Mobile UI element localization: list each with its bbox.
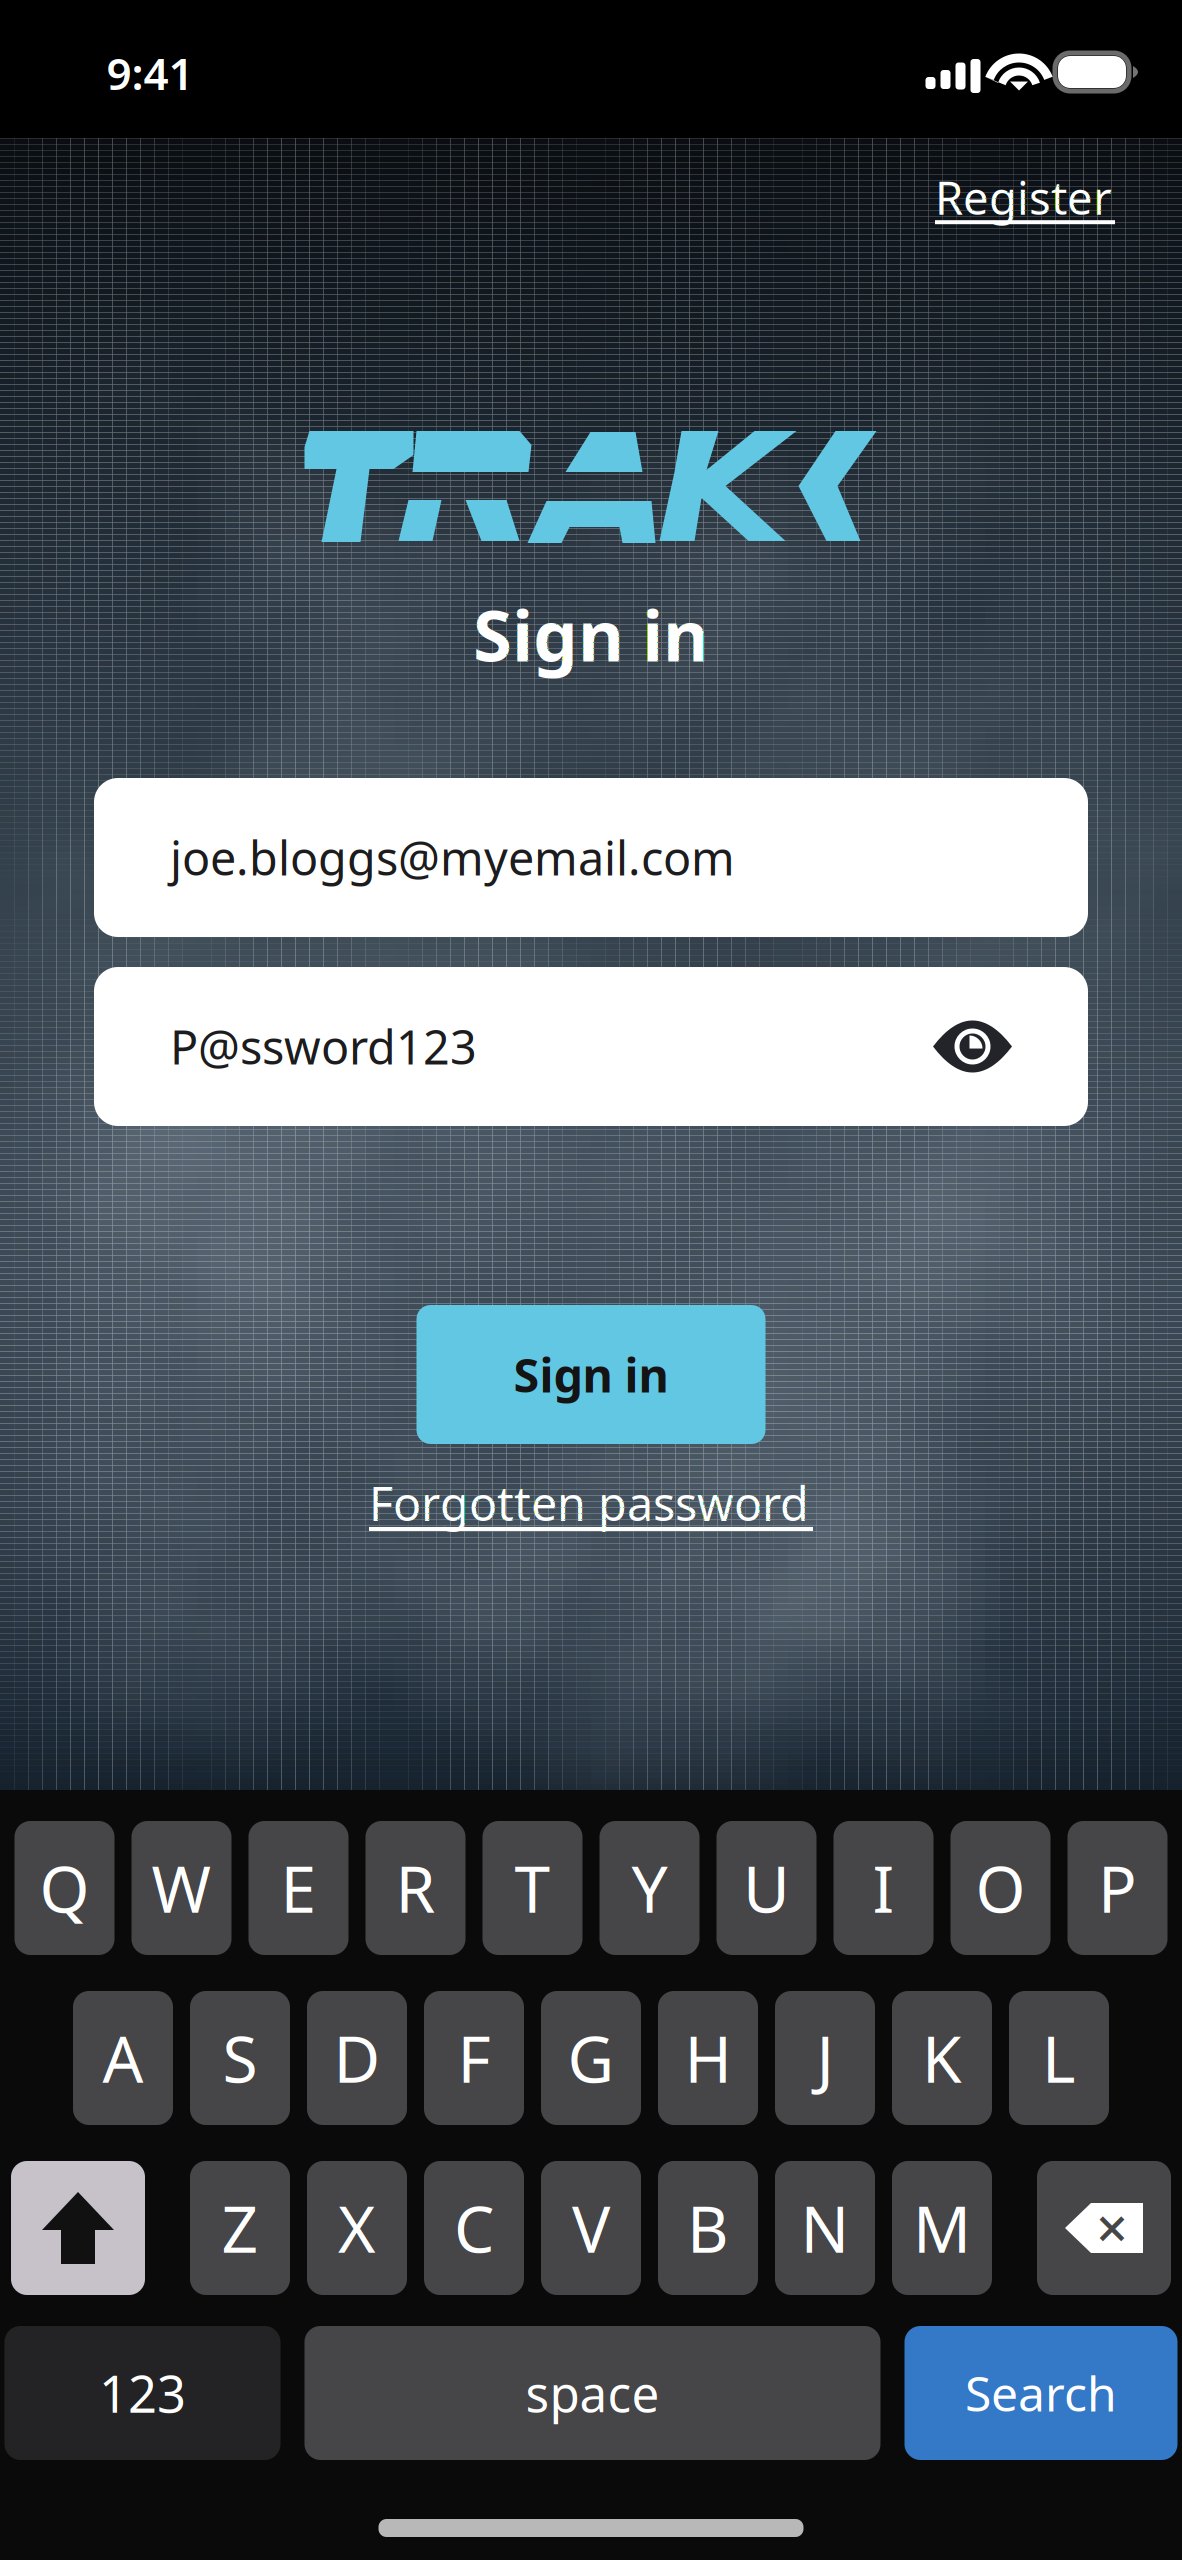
button[interactable]: E (248, 1821, 348, 1955)
button[interactable]: F (424, 1991, 524, 2125)
button[interactable]: L (1009, 1991, 1109, 2125)
button[interactable]: Show password (933, 1021, 1012, 1072)
staticText: I (872, 1845, 894, 1930)
staticText: O (975, 1845, 1025, 1930)
button[interactable]: I (833, 1821, 933, 1955)
staticText: C (454, 2185, 494, 2270)
button[interactable]: O (950, 1821, 1050, 1955)
staticText: L (1042, 2015, 1076, 2100)
staticText: space (525, 2360, 659, 2426)
button[interactable]: B (658, 2161, 758, 2295)
button[interactable]: G (541, 1991, 641, 2125)
staticText: Register (935, 167, 1112, 227)
staticText: M (913, 2185, 971, 2270)
staticText: joe.bloggs@myemail.com (170, 826, 735, 888)
staticText: B (687, 2185, 729, 2270)
button[interactable]: S (190, 1991, 290, 2125)
button[interactable]: K (892, 1991, 992, 2125)
staticText: W (151, 1845, 211, 1930)
staticText: X (338, 2185, 376, 2270)
staticText: R (395, 1845, 435, 1930)
button[interactable]: Delete (1037, 2161, 1171, 2295)
staticText: P@ssword123 (170, 1015, 477, 1077)
button[interactable]: Sign in (416, 1305, 765, 1444)
button[interactable]: W (131, 1821, 231, 1955)
button[interactable]: V (541, 2161, 641, 2295)
button[interactable]: Forgotten password (369, 1472, 813, 1532)
button[interactable]: Z (190, 2161, 290, 2295)
staticText: H (684, 2015, 731, 2100)
staticText: D (333, 2015, 380, 2100)
staticText: Sign in (473, 587, 709, 681)
staticText: Z (221, 2185, 258, 2270)
button[interactable]: C (424, 2161, 524, 2295)
button[interactable]: Y (599, 1821, 699, 1955)
button[interactable]: Shift (11, 2161, 145, 2295)
staticText: J (816, 2015, 833, 2100)
button[interactable]: J (775, 1991, 875, 2125)
button[interactable]: Q (14, 1821, 114, 1955)
staticText: E (280, 1845, 316, 1930)
staticText: Y (631, 1845, 667, 1930)
button[interactable]: D (307, 1991, 407, 2125)
staticText: 123 (99, 2359, 186, 2427)
staticText: P (1098, 1845, 1137, 1930)
button[interactable]: X (307, 2161, 407, 2295)
staticText: 9:41 (106, 44, 193, 102)
button[interactable]: N (775, 2161, 875, 2295)
button[interactable]: U (716, 1821, 816, 1955)
button[interactable]: A (73, 1991, 173, 2125)
staticText: U (743, 1845, 790, 1930)
staticText: V (572, 2185, 610, 2270)
staticText: N (800, 2185, 849, 2270)
button[interactable]: H (658, 1991, 758, 2125)
staticText: Forgotten password (369, 1472, 809, 1534)
button[interactable]: Search (904, 2326, 1177, 2460)
staticText: T (514, 1845, 550, 1930)
staticText: G (567, 2015, 614, 2100)
staticText: F (457, 2015, 490, 2100)
button[interactable]: R (365, 1821, 465, 1955)
staticText: × (1096, 2190, 1128, 2264)
button[interactable]: 123 (4, 2326, 280, 2460)
staticText: Search (965, 2361, 1117, 2425)
staticText: Q (39, 1845, 89, 1930)
button[interactable]: Register (935, 167, 1115, 225)
staticText: A (102, 2015, 143, 2100)
button[interactable]: P (1067, 1821, 1167, 1955)
staticText: S (222, 2015, 257, 2100)
button[interactable]: T (482, 1821, 582, 1955)
staticText: K (922, 2015, 962, 2100)
staticText: Sign in (513, 1343, 668, 1405)
button[interactable]: space (304, 2326, 880, 2460)
button[interactable]: M (892, 2161, 992, 2295)
